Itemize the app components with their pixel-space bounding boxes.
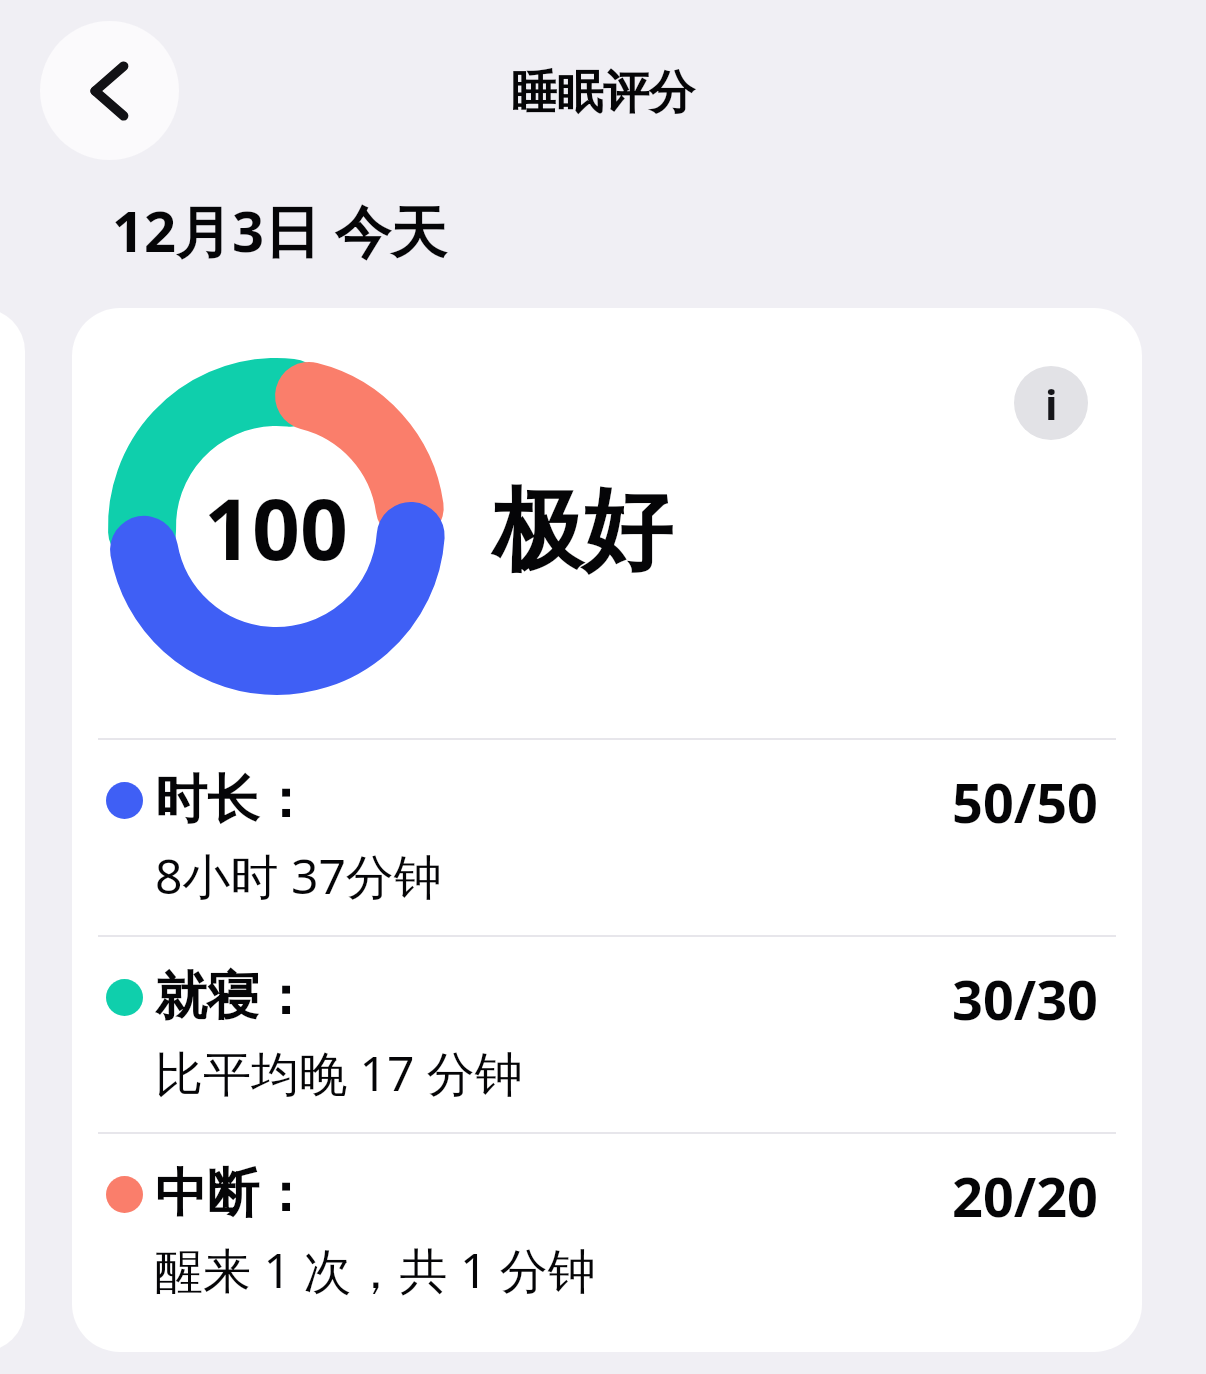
staticText: 50/50 <box>952 765 1098 839</box>
button[interactable]: Back <box>40 21 179 160</box>
button[interactable]: 时长： <box>72 740 1142 935</box>
staticText: 就寝： <box>155 964 311 1030</box>
staticText: 比平均晚 17 分钟 <box>155 1040 523 1106</box>
staticText: 睡眠评分 <box>0 64 1206 122</box>
staticText: 极好 <box>492 474 672 587</box>
staticText: 醒来 1 次，共 1 分钟 <box>155 1237 596 1303</box>
staticText: 中断： <box>155 1161 311 1227</box>
staticText: 100 <box>204 470 349 584</box>
staticText: 时长： <box>155 767 311 833</box>
button[interactable]: 就寝： <box>72 937 1142 1132</box>
staticText: 20/20 <box>952 1159 1098 1233</box>
staticText: 30/30 <box>952 962 1098 1036</box>
staticText: 8小时 37分钟 <box>155 843 442 909</box>
button[interactable]: Information <box>1014 366 1088 440</box>
button[interactable]: 中断： <box>72 1134 1142 1329</box>
staticText: 12月3日 今天 <box>112 192 447 268</box>
staticText: i <box>1045 375 1058 432</box>
